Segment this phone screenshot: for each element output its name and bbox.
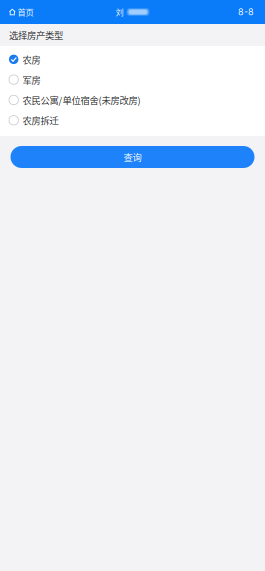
staticText: 农房 — [22, 53, 40, 66]
staticText: 选择房产类型 — [9, 28, 63, 42]
staticText: 刘 — [115, 6, 123, 18]
staticText: 首页 — [18, 6, 34, 18]
button[interactable]: 查询 — [10, 146, 254, 168]
staticText: 农民公寓/单位宿舍(未房改房) — [22, 93, 140, 107]
button[interactable]: 首页 — [0, 1, 41, 23]
staticText: 8-8 — [238, 6, 254, 17]
button[interactable]: 农房拆迁 — [0, 110, 265, 130]
button[interactable]: 军房 — [0, 69, 265, 90]
staticText: 农房拆迁 — [22, 113, 58, 127]
staticText: 军房 — [22, 73, 40, 86]
button[interactable]: 农民公寓/单位宿舍(未房改房) — [0, 90, 265, 110]
button[interactable]: 农房 — [0, 49, 265, 69]
staticText: 查询 — [123, 150, 141, 164]
